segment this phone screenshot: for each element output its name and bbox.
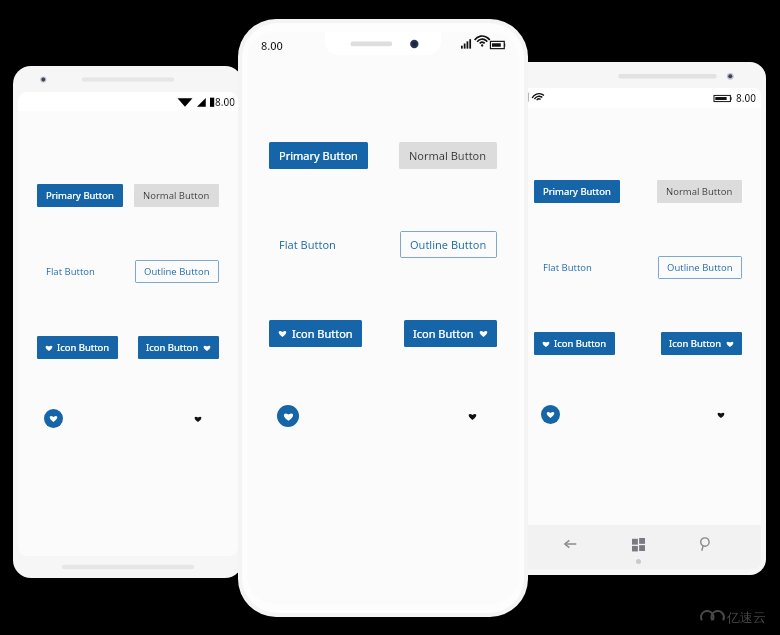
button[interactable]: Like [711, 405, 730, 424]
staticText: Icon Button [413, 326, 474, 341]
button[interactable]: Normal Button [399, 142, 497, 169]
button[interactable]: Back [557, 531, 583, 557]
button[interactable]: Primary Button [534, 180, 620, 203]
staticText: 8.00 [261, 38, 283, 53]
staticText: Flat Button [46, 265, 95, 278]
button[interactable]: Search [693, 531, 719, 557]
button[interactable]: Icon Button [534, 332, 615, 355]
button[interactable]: Like [188, 409, 207, 428]
staticText: Icon Button [669, 337, 722, 350]
button[interactable]: Icon Button [661, 332, 742, 355]
button[interactable]: Flat Button [534, 256, 601, 279]
staticText: Outline Button [144, 265, 210, 278]
button[interactable]: Favorite [541, 405, 560, 424]
button[interactable]: Home [625, 531, 651, 557]
button[interactable]: Favorite [44, 409, 63, 428]
button[interactable]: Primary Button [37, 184, 123, 207]
staticText: Outline Button [667, 261, 733, 274]
staticText: Primary Button [46, 189, 114, 202]
button[interactable]: Outline Button [400, 231, 497, 258]
button[interactable]: Icon Button [269, 320, 362, 347]
staticText: 8.00 [215, 95, 235, 109]
staticText: Primary Button [543, 185, 611, 198]
button[interactable]: Flat Button [37, 260, 104, 283]
staticText: Normal Button [409, 148, 487, 163]
staticText: Outline Button [410, 237, 487, 252]
staticText: Icon Button [292, 326, 353, 341]
staticText: Icon Button [146, 341, 199, 354]
staticText: Normal Button [666, 185, 733, 198]
button[interactable]: Like [461, 405, 483, 427]
button[interactable]: Favorite [277, 405, 299, 427]
button[interactable]: Normal Button [134, 184, 219, 207]
button[interactable]: Icon Button [138, 336, 219, 359]
button[interactable]: Primary Button [269, 142, 368, 169]
button[interactable]: Icon Button [37, 336, 118, 359]
button[interactable]: Flat Button [269, 231, 346, 258]
staticText: Flat Button [279, 237, 336, 252]
button[interactable]: Outline Button [658, 256, 742, 279]
button[interactable]: Normal Button [657, 180, 742, 203]
staticText: 亿速云 [727, 609, 766, 625]
staticText: Icon Button [57, 341, 110, 354]
staticText: Normal Button [143, 189, 210, 202]
staticText: Icon Button [554, 337, 607, 350]
button[interactable]: Icon Button [404, 320, 497, 347]
staticText: Flat Button [543, 261, 592, 274]
staticText: Primary Button [279, 148, 358, 163]
button[interactable]: Outline Button [135, 260, 219, 283]
staticText: 8.00 [736, 91, 756, 105]
